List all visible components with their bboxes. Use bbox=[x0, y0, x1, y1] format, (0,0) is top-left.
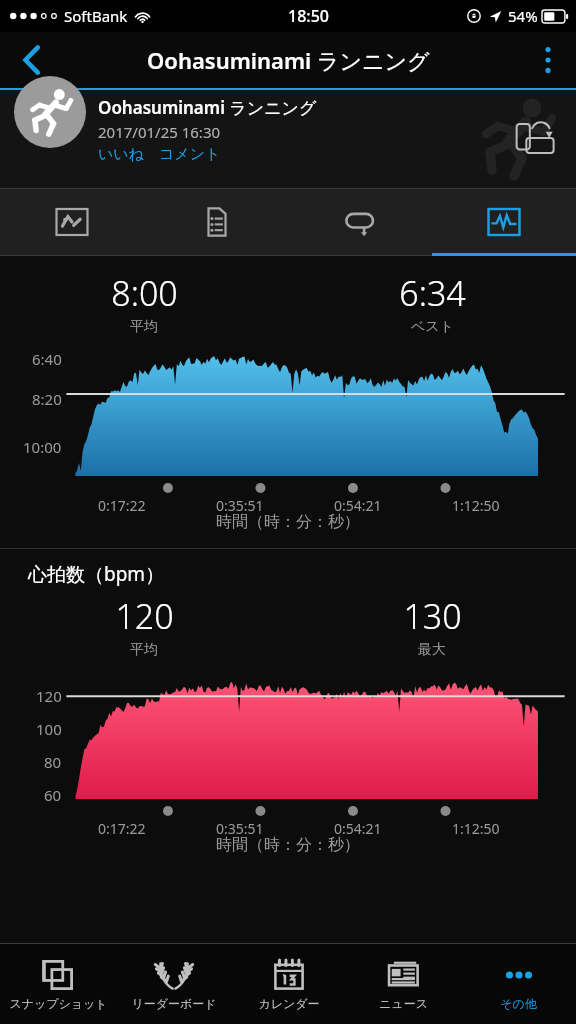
staticText: 時間（時：分：秒） bbox=[216, 835, 360, 855]
staticText: 120 bbox=[115, 593, 174, 639]
button[interactable]: コメント bbox=[159, 145, 221, 164]
staticText: 0:54:21 bbox=[334, 819, 382, 838]
button[interactable]: その他 bbox=[461, 944, 576, 1024]
staticText: 8:00 bbox=[111, 270, 178, 316]
staticText: 18:50 bbox=[288, 5, 329, 27]
staticText: リーダーボード bbox=[131, 996, 217, 1011]
staticText: 1:12:50 bbox=[452, 819, 500, 838]
button[interactable]: More options bbox=[520, 32, 576, 88]
button[interactable]: Laps bbox=[288, 188, 432, 256]
staticText: 時間（時：分：秒） bbox=[216, 512, 360, 532]
staticText: その他 bbox=[500, 996, 537, 1011]
staticText: ニュース bbox=[379, 996, 428, 1011]
button[interactable]: ニュース bbox=[346, 944, 461, 1024]
staticText: 心拍数（bpm） bbox=[28, 561, 165, 587]
staticText: 54% bbox=[508, 6, 538, 26]
button[interactable]: Graphs bbox=[432, 188, 576, 256]
button[interactable]: Map bbox=[0, 188, 144, 256]
staticText: 10:00 bbox=[23, 437, 62, 457]
staticText: Oohasuminami ランニング bbox=[98, 96, 317, 119]
button[interactable]: カレンダー bbox=[231, 944, 346, 1024]
staticText: 平均 bbox=[130, 641, 158, 659]
button[interactable]: いいね bbox=[98, 145, 145, 164]
staticText: Oohasuminami ランニング bbox=[147, 45, 430, 75]
staticText: 60 bbox=[44, 785, 62, 805]
staticText: 80 bbox=[44, 752, 62, 772]
staticText: ベスト bbox=[411, 318, 454, 336]
staticText: 0:35:51 bbox=[216, 496, 264, 515]
button[interactable]: スナップショット bbox=[0, 944, 116, 1024]
staticText: 平均 bbox=[130, 318, 158, 336]
staticText: 6:40 bbox=[32, 349, 62, 369]
staticText: 120 bbox=[36, 686, 62, 706]
button[interactable]: Oohasuminami ランニング bbox=[0, 88, 576, 188]
staticText: 8:20 bbox=[32, 389, 62, 409]
staticText: スナップショット bbox=[9, 996, 108, 1011]
staticText: 130 bbox=[403, 593, 462, 639]
staticText: 0:17:22 bbox=[98, 819, 146, 838]
staticText: 0:54:21 bbox=[334, 496, 382, 515]
button[interactable]: Details bbox=[144, 188, 288, 256]
button[interactable]: Rotate device bbox=[508, 110, 564, 166]
staticText: カレンダー bbox=[258, 996, 320, 1011]
staticText: 0:17:22 bbox=[98, 496, 146, 515]
staticText: 6:34 bbox=[399, 270, 466, 316]
staticText: 最大 bbox=[418, 641, 446, 659]
staticText: 0:35:51 bbox=[216, 819, 264, 838]
staticText: 100 bbox=[36, 719, 62, 739]
staticText: 1:12:50 bbox=[452, 496, 500, 515]
button[interactable]: リーダーボード bbox=[116, 944, 231, 1024]
staticText: 2017/01/25 16:30 bbox=[98, 122, 221, 142]
button[interactable]: Back bbox=[0, 32, 64, 88]
staticText: SoftBank bbox=[64, 6, 128, 26]
